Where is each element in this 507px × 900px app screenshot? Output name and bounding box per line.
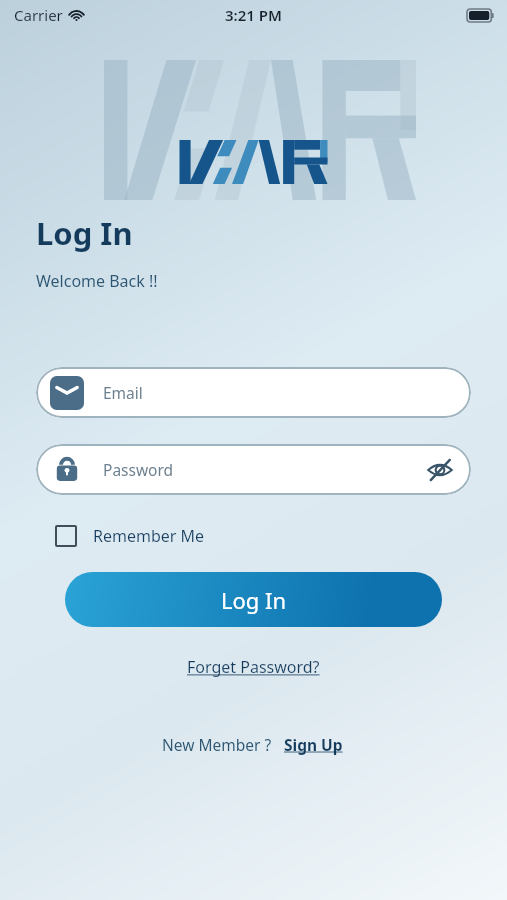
staticText: Password: [103, 459, 174, 480]
button[interactable]: Remember Me: [53, 521, 207, 551]
staticText: Carrier: [14, 5, 63, 25]
staticText: Remember Me: [93, 525, 205, 547]
staticText: Forget Password?: [187, 656, 320, 678]
button[interactable]: Log In: [65, 572, 442, 627]
button[interactable]: Forget Password?: [181, 650, 326, 684]
staticText: Sign Up: [284, 734, 343, 755]
staticText: New Member ?: [162, 734, 272, 755]
staticText: Log In: [221, 585, 287, 615]
staticText: 3:21 PM: [225, 5, 282, 25]
button[interactable]: Email: [36, 367, 471, 418]
staticText: Log In: [36, 212, 133, 254]
button[interactable]: Show password: [423, 453, 457, 487]
staticText: Welcome Back !!: [36, 270, 158, 292]
staticText: Email: [103, 382, 143, 403]
button[interactable]: Sign Up: [282, 732, 345, 757]
button[interactable]: Password: [36, 444, 471, 495]
